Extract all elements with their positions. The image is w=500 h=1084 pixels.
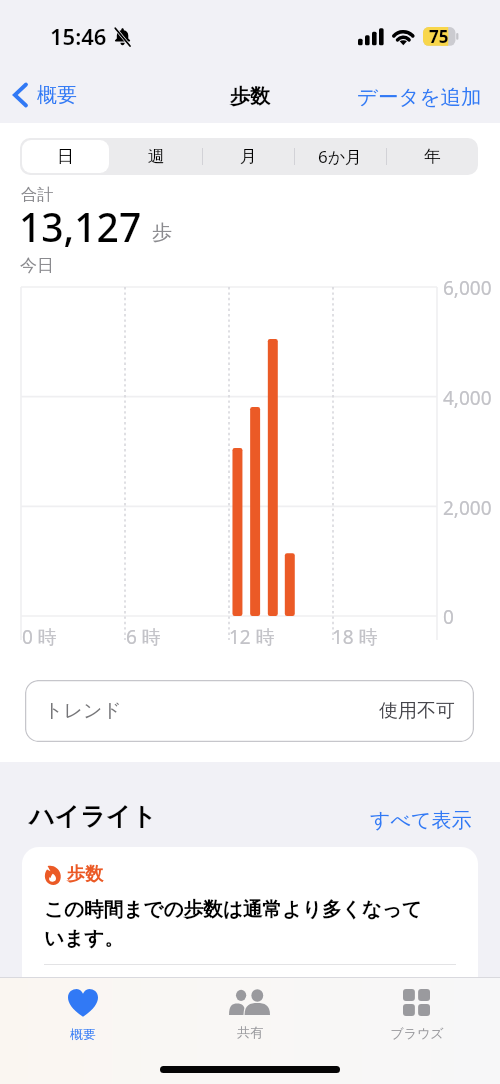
staticText: 12 時	[229, 624, 275, 650]
button[interactable]: 年	[386, 138, 478, 175]
staticText: 0	[443, 604, 454, 630]
staticText: この時間までの歩数は通常より多くなっています。	[44, 897, 436, 950]
staticText: 13,127	[19, 200, 142, 253]
button[interactable]: 歩数	[22, 847, 478, 1007]
staticText: 歩	[152, 220, 172, 245]
staticText: 共有	[237, 1024, 263, 1040]
staticText: 週	[148, 146, 165, 167]
staticText: すべて表示	[370, 808, 472, 833]
staticText: 18 時	[332, 624, 378, 650]
button[interactable]: 日	[20, 138, 111, 175]
button[interactable]: 日	[22, 140, 109, 173]
button[interactable]: 6か月	[294, 138, 386, 175]
staticText: ブラウズ	[390, 1025, 444, 1041]
button[interactable]: 概要	[6, 76, 83, 114]
staticText: 15:46	[50, 21, 107, 51]
staticText: 2,000	[443, 495, 492, 521]
button[interactable]: 月	[202, 138, 294, 175]
staticText: 6か月	[318, 145, 363, 168]
button[interactable]: Summary	[0, 985, 166, 1046]
button[interactable]: データを追加	[353, 79, 486, 115]
staticText: 歩数	[67, 863, 103, 886]
staticText: 0 時	[22, 624, 57, 650]
button[interactable]: トレンド	[25, 680, 474, 742]
staticText: 月	[240, 146, 257, 167]
staticText: 概要	[37, 83, 77, 108]
staticText: 4,000	[443, 385, 492, 411]
staticText: 日	[57, 146, 74, 167]
staticText: 75	[429, 25, 449, 48]
staticText: 6 時	[126, 624, 161, 650]
staticText: トレンド	[44, 699, 122, 723]
staticText: データを追加	[357, 84, 482, 110]
staticText: 日	[57, 146, 74, 167]
button[interactable]: 週	[111, 138, 202, 175]
staticText: 歩数	[230, 84, 270, 109]
button[interactable]: Sharing	[166, 985, 333, 1044]
staticText: 今日	[20, 255, 54, 276]
staticText: 合計	[21, 185, 53, 205]
staticText: 概要	[70, 1026, 96, 1042]
button[interactable]: Browse	[333, 985, 500, 1045]
button[interactable]: すべて表示	[366, 804, 476, 837]
staticText: 年	[424, 146, 441, 167]
staticText: ハイライト	[29, 801, 157, 832]
staticText: 6,000	[443, 275, 492, 301]
staticText: 使用不可	[379, 699, 455, 723]
